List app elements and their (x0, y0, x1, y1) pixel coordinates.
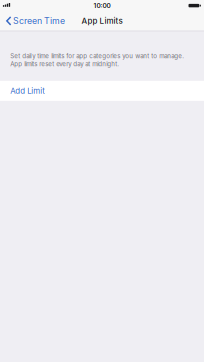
button[interactable]: Add Limit (0, 81, 204, 101)
staticText: App Limits (81, 16, 122, 26)
staticText: Add Limit (10, 86, 45, 96)
button[interactable]: Screen Time (0, 11, 68, 31)
staticText: 10:00 (93, 2, 110, 9)
staticText: Set daily time limits for app categories… (10, 52, 184, 60)
staticText: App limits reset every day at midnight. (10, 60, 119, 68)
staticText: Screen Time (13, 16, 65, 26)
